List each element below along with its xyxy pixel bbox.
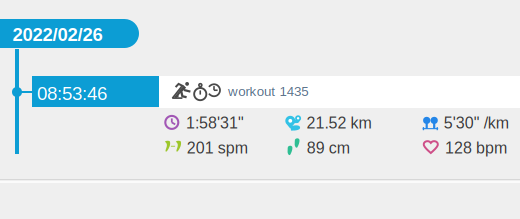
staticText: 89 cm [307,139,350,157]
staticText: 1:58'31" [186,114,244,132]
button[interactable]: workout 1435 [228,84,308,99]
staticText: 5'30" /km [444,114,509,132]
button[interactable]: 08:53:46 [32,76,159,107]
button[interactable]: 2022/02/26 [0,19,139,48]
staticText: 2022/02/26 [12,24,102,45]
staticText: 08:53:46 [37,83,107,104]
staticText: 201 spm [187,139,248,157]
staticText: 21.52 km [307,114,372,132]
staticText: workout 1435 [228,84,308,99]
staticText: 128 bpm [445,139,507,157]
